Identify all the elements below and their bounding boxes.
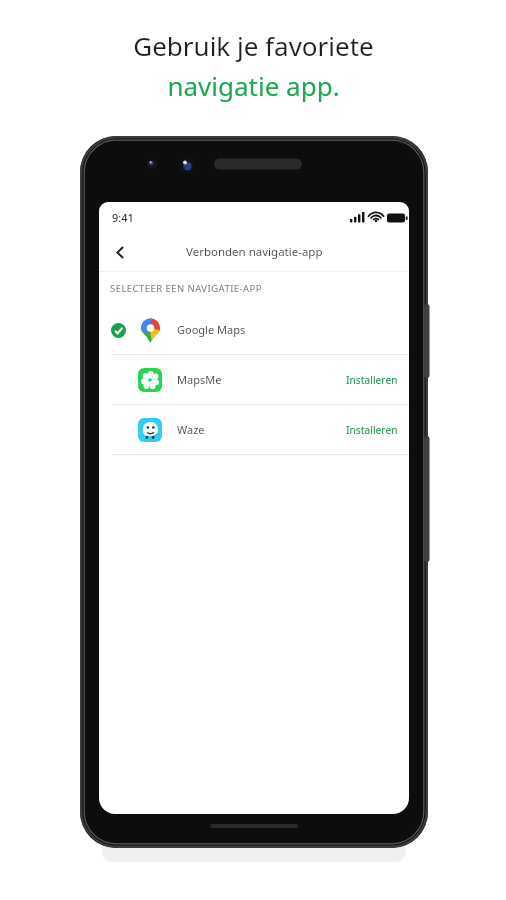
staticText: MapsMe bbox=[177, 372, 222, 387]
button[interactable]: Waze bbox=[99, 405, 409, 454]
staticText: Gebruik je favoriete bbox=[133, 28, 374, 63]
staticText: Verbonden navigatie-app bbox=[186, 244, 323, 260]
staticText: SELECTEER EEN NAVIGATIE-APP bbox=[110, 282, 262, 295]
button[interactable]: MapsMe bbox=[99, 355, 409, 404]
staticText: Installeren bbox=[346, 423, 398, 437]
button[interactable]: Google Maps bbox=[99, 305, 409, 354]
staticText: Waze bbox=[177, 422, 205, 437]
button[interactable]: Back bbox=[104, 236, 136, 268]
staticText: Installeren bbox=[346, 373, 398, 387]
staticText: Google Maps bbox=[177, 322, 246, 337]
staticText: 9:41 bbox=[112, 210, 134, 225]
staticText: navigatie app. bbox=[167, 68, 340, 103]
